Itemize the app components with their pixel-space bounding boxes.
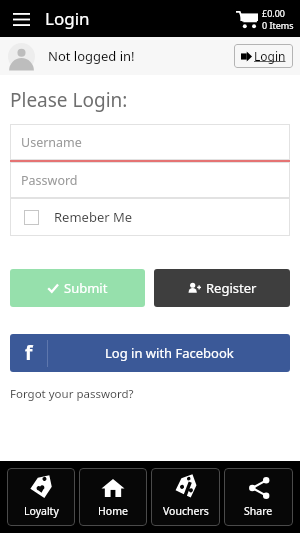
staticText: 0 Items [262,19,294,31]
button[interactable]: Remeber Me [10,198,290,236]
staticText: Login [254,48,286,64]
button[interactable]: Password [10,162,290,198]
button[interactable]: f [10,334,290,372]
staticText: Password [21,172,78,189]
staticText: Register [206,279,257,297]
staticText: Please Login: [10,87,128,113]
button[interactable]: Submit [10,269,145,307]
button[interactable]: Login [234,44,293,68]
button[interactable]: Menu [6,4,36,34]
staticText: Not logged in! [48,47,135,65]
staticText: Loyalty [24,504,59,518]
button[interactable]: Register [154,269,290,307]
staticText: Home [98,504,128,518]
button[interactable]: Forgot your password? [10,386,134,402]
staticText: £0.00 [262,7,286,19]
button[interactable]: Home [79,468,147,526]
staticText: Submit [64,279,108,297]
staticText: Remeber Me [54,208,133,226]
staticText: Username [21,134,82,151]
staticText: f [25,340,33,366]
staticText: Log in with Facebook [105,344,234,362]
button[interactable]: Vouchers [151,468,220,526]
staticText: Login [45,7,90,30]
staticText: Vouchers [163,504,209,518]
button[interactable]: Loyalty [7,468,75,526]
button[interactable]: Share [224,468,293,526]
button[interactable]: Cart [236,7,294,31]
button[interactable]: Username [10,124,290,160]
staticText: Share [244,504,273,518]
staticText: Forgot your password? [10,386,134,402]
